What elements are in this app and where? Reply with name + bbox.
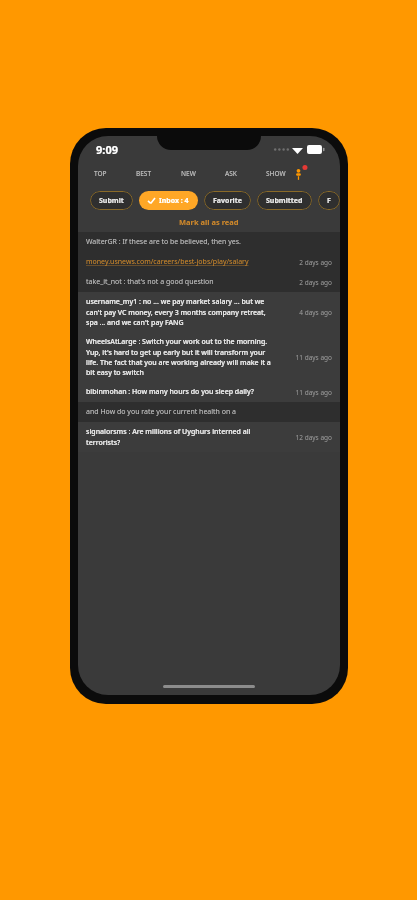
button[interactable]: Profile, 1 notification <box>290 162 312 184</box>
staticText: WalterGR : If these are to be believed, … <box>86 237 241 247</box>
button[interactable]: ASK <box>223 166 239 181</box>
button[interactable]: WalterGR : If these are to be believed, … <box>78 232 340 252</box>
button[interactable]: and How do you rate your current health … <box>78 402 340 422</box>
staticText: money.usnews.com/careers/best-jobs/play/… <box>86 257 249 267</box>
staticText: 11 days ago <box>295 353 332 362</box>
staticText: NEW <box>181 169 196 178</box>
button[interactable]: Submit <box>90 191 133 210</box>
button[interactable]: BEST <box>134 166 154 181</box>
button[interactable]: SHOW <box>264 166 288 181</box>
button[interactable]: Inbox : 4 <box>139 191 198 210</box>
staticText: WheelsAtLarge : Switch your work out to … <box>86 337 278 377</box>
button[interactable]: username_my1 : no ... we pay market sala… <box>78 292 340 332</box>
button[interactable]: signalorsms : Are millions of Uyghurs in… <box>78 422 340 452</box>
button[interactable]: Mark all as read <box>169 214 249 230</box>
staticText: BEST <box>136 169 152 178</box>
staticText: 2 days ago <box>299 278 332 287</box>
staticText: bibinmohan : How many hours do you sleep… <box>86 387 254 397</box>
staticText: Favorite <box>213 196 242 206</box>
staticText: 11 days ago <box>295 388 332 397</box>
staticText: 2 days ago <box>299 258 332 267</box>
staticText: signalorsms : Are millions of Uyghurs in… <box>86 427 278 447</box>
button[interactable]: bibinmohan : How many hours do you sleep… <box>78 382 340 402</box>
staticText: SHOW <box>266 169 286 178</box>
button[interactable]: NEW <box>179 166 198 181</box>
staticText: Submitted <box>266 196 303 206</box>
staticText: TOP <box>94 169 107 178</box>
button[interactable]: Favorite <box>204 191 251 210</box>
staticText: F <box>327 196 331 206</box>
button[interactable]: take_it_not : that's not a good question <box>78 272 340 292</box>
staticText: username_my1 : no ... we pay market sala… <box>86 297 278 327</box>
staticText: Mark all as read <box>179 217 239 227</box>
staticText: ASK <box>225 169 237 178</box>
staticText: Inbox : 4 <box>159 196 189 206</box>
staticText: 12 days ago <box>295 433 332 442</box>
button[interactable]: WheelsAtLarge : Switch your work out to … <box>78 332 340 382</box>
staticText: 9:09 <box>96 142 118 157</box>
button[interactable]: Submitted <box>257 191 312 210</box>
staticText: 4 days ago <box>299 308 332 317</box>
button[interactable]: F <box>318 191 340 210</box>
button[interactable]: TOP <box>92 166 109 181</box>
button[interactable]: money.usnews.com/careers/best-jobs/play/… <box>78 252 340 272</box>
staticText: Submit <box>99 196 124 206</box>
staticText: and How do you rate your current health … <box>86 407 237 417</box>
staticText: take_it_not : that's not a good question <box>86 277 214 287</box>
